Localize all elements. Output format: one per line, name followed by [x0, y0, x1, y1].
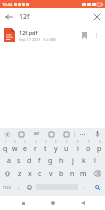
- button[interactable]: j: [67, 154, 78, 167]
- button[interactable]: 5: [40, 140, 50, 154]
- staticText: v: [49, 169, 53, 179]
- button[interactable]: Settings: [44, 128, 59, 140]
- button[interactable]: 3: [20, 140, 30, 154]
- button[interactable]: ,: [14, 180, 24, 194]
- staticText: s: [17, 156, 21, 166]
- button[interactable]: z: [15, 167, 25, 180]
- button[interactable]: Back: [73, 196, 93, 210]
- staticText: a: [7, 156, 11, 166]
- button[interactable]: l: [89, 154, 100, 167]
- staticText: GIF: [34, 132, 40, 136]
- staticText: 12f: [19, 12, 30, 22]
- staticText: w: [12, 144, 18, 154]
- staticText: m: [80, 169, 87, 179]
- button[interactable]: Home: [43, 196, 63, 210]
- button[interactable]: k: [78, 154, 89, 167]
- button[interactable]: a: [4, 154, 14, 167]
- staticText: 8: [77, 140, 79, 144]
- button[interactable]: f: [34, 154, 45, 167]
- staticText: q: [3, 144, 8, 154]
- button[interactable]: GIF: [29, 128, 44, 140]
- staticText: ?123: [3, 185, 11, 190]
- staticText: 12f.pdf: [19, 29, 38, 36]
- staticText: 3: [24, 140, 26, 144]
- staticText: z: [18, 169, 22, 179]
- button[interactable]: b: [56, 167, 67, 180]
- button[interactable]: 8: [72, 140, 83, 154]
- button[interactable]: v: [45, 167, 56, 180]
- staticText: 6: [55, 140, 57, 144]
- button[interactable]: 7: [61, 140, 72, 154]
- staticText: r: [34, 144, 37, 154]
- staticText: 1: [5, 140, 7, 144]
- button[interactable]: d: [24, 154, 34, 167]
- staticText: l: [94, 156, 96, 166]
- button[interactable]: Clipboard: [59, 128, 74, 140]
- staticText: n: [70, 169, 75, 179]
- button[interactable]: 9: [83, 140, 94, 154]
- button[interactable]: c: [35, 167, 45, 180]
- staticText: i: [77, 144, 79, 154]
- staticText: p: [97, 144, 102, 154]
- button[interactable]: Voice input: [90, 128, 105, 140]
- staticText: 4: [35, 140, 37, 144]
- button[interactable]: 0: [94, 140, 105, 154]
- button[interactable]: Clear search: [88, 8, 105, 25]
- button[interactable]: 4: [30, 140, 40, 154]
- button[interactable]: 12f.pdf: [0, 25, 105, 45]
- staticText: e: [23, 144, 27, 154]
- staticText: t: [44, 144, 47, 154]
- staticText: u: [64, 144, 69, 154]
- staticText: d: [27, 156, 32, 166]
- button[interactable]: [0, 167, 15, 180]
- staticText: o: [86, 144, 91, 154]
- button[interactable]: Stickers: [14, 128, 29, 140]
- staticText: 7: [66, 140, 68, 144]
- button[interactable]: m: [78, 167, 89, 180]
- staticText: b: [59, 169, 64, 179]
- button[interactable]: ?123: [0, 180, 14, 194]
- button[interactable]: [24, 180, 35, 194]
- button[interactable]: 1: [0, 140, 10, 154]
- button[interactable]: 6: [50, 140, 61, 154]
- staticText: 9: [88, 140, 90, 144]
- staticText: 10:44: [2, 2, 13, 7]
- button[interactable]: Previous: [0, 128, 14, 140]
- staticText: y: [54, 144, 58, 154]
- button[interactable]: g: [45, 154, 56, 167]
- button[interactable]: More: [75, 128, 90, 140]
- staticText: 5: [45, 140, 47, 144]
- staticText: k: [82, 156, 86, 166]
- staticText: g: [48, 156, 53, 166]
- button[interactable]: h: [56, 154, 67, 167]
- button[interactable]: x: [25, 167, 35, 180]
- button[interactable]: s: [14, 154, 24, 167]
- button[interactable]: .: [79, 180, 90, 194]
- button[interactable]: 2: [10, 140, 20, 154]
- button[interactable]: [89, 167, 105, 180]
- staticText: h: [59, 156, 64, 166]
- staticText: .: [84, 184, 86, 191]
- button[interactable]: Back: [0, 8, 17, 25]
- button[interactable]: n: [67, 167, 78, 180]
- button[interactable]: Bookmark: [77, 28, 91, 42]
- staticText: x: [28, 169, 32, 179]
- staticText: 0: [99, 140, 101, 144]
- button[interactable]: More options: [91, 30, 101, 40]
- staticText: Sep 17 2021 6.5 MB: [19, 37, 56, 42]
- button[interactable]: [90, 180, 105, 194]
- staticText: f: [38, 156, 41, 166]
- staticText: ,: [18, 184, 20, 191]
- staticText: 2: [14, 140, 16, 144]
- button[interactable]: Recents: [13, 196, 33, 210]
- staticText: c: [38, 169, 42, 179]
- staticText: j: [72, 156, 74, 166]
